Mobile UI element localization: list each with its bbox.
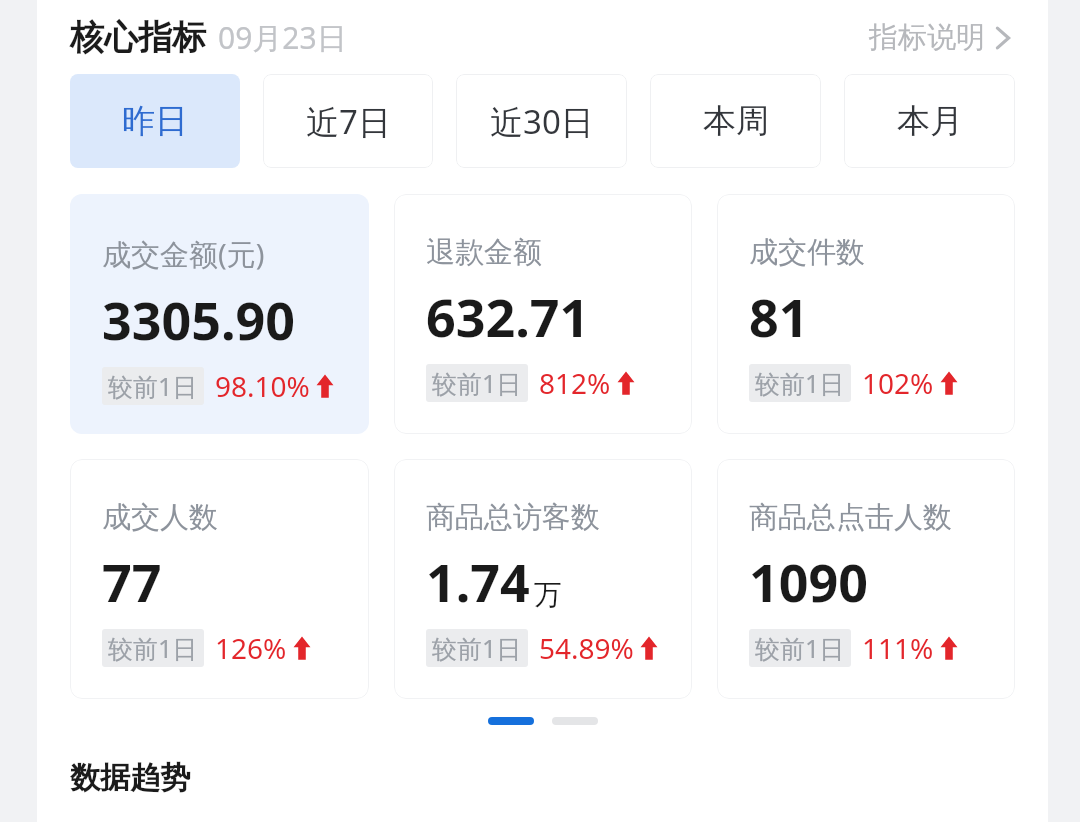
button[interactable]: 成交金额(元) [70,194,369,434]
staticText: 81 [749,281,809,352]
button[interactable]: 本月 [844,74,1015,168]
staticText: 较前1日 [432,366,522,400]
staticText: 较前1日 [755,366,845,400]
staticText: 商品总点击人数 [749,499,952,536]
button[interactable]: 近30日 [456,74,627,168]
staticText: 812% [539,364,611,402]
staticText: 09月23日 [218,17,347,58]
staticText: 较前1日 [108,631,198,665]
staticText: 632.71 [426,281,590,352]
staticText: 98.10% [215,367,310,405]
staticText: 本周 [703,100,769,142]
staticText: 成交金额(元) [102,234,265,274]
staticText: 商品总访客数 [426,499,600,536]
staticText: 1090 [749,546,868,617]
staticText: 万 [534,577,562,612]
staticText: 成交人数 [102,499,218,536]
staticText: 111% [862,629,934,667]
button[interactable]: 指标说明 [865,13,1015,62]
staticText: 较前1日 [755,631,845,665]
staticText: 近30日 [490,99,594,144]
staticText: 126% [215,629,287,667]
button[interactable]: 商品总访客数 [394,459,692,699]
staticText: 近7日 [306,99,391,144]
staticText: 较前1日 [432,631,522,665]
staticText: 退款金额 [426,234,542,271]
button[interactable]: 成交件数 [717,194,1015,434]
button[interactable]: 成交人数 [70,459,369,699]
staticText: 本月 [897,100,963,142]
button[interactable]: 近7日 [263,74,433,168]
button[interactable]: 退款金额 [394,194,692,434]
staticText: 指标说明 [869,19,985,56]
staticText: 77 [102,546,162,617]
staticText: 数据趋势 [70,759,190,797]
staticText: 1.74 [426,546,530,617]
staticText: 3305.90 [102,284,296,355]
button[interactable]: 昨日 [70,74,240,168]
staticText: 昨日 [122,100,188,142]
button[interactable]: 商品总点击人数 [717,459,1015,699]
button[interactable]: 本周 [650,74,821,168]
staticText: 成交件数 [749,234,865,271]
staticText: 102% [862,364,934,402]
staticText: 较前1日 [108,369,198,403]
staticText: 核心指标 [70,16,206,59]
staticText: 54.89% [539,629,634,667]
